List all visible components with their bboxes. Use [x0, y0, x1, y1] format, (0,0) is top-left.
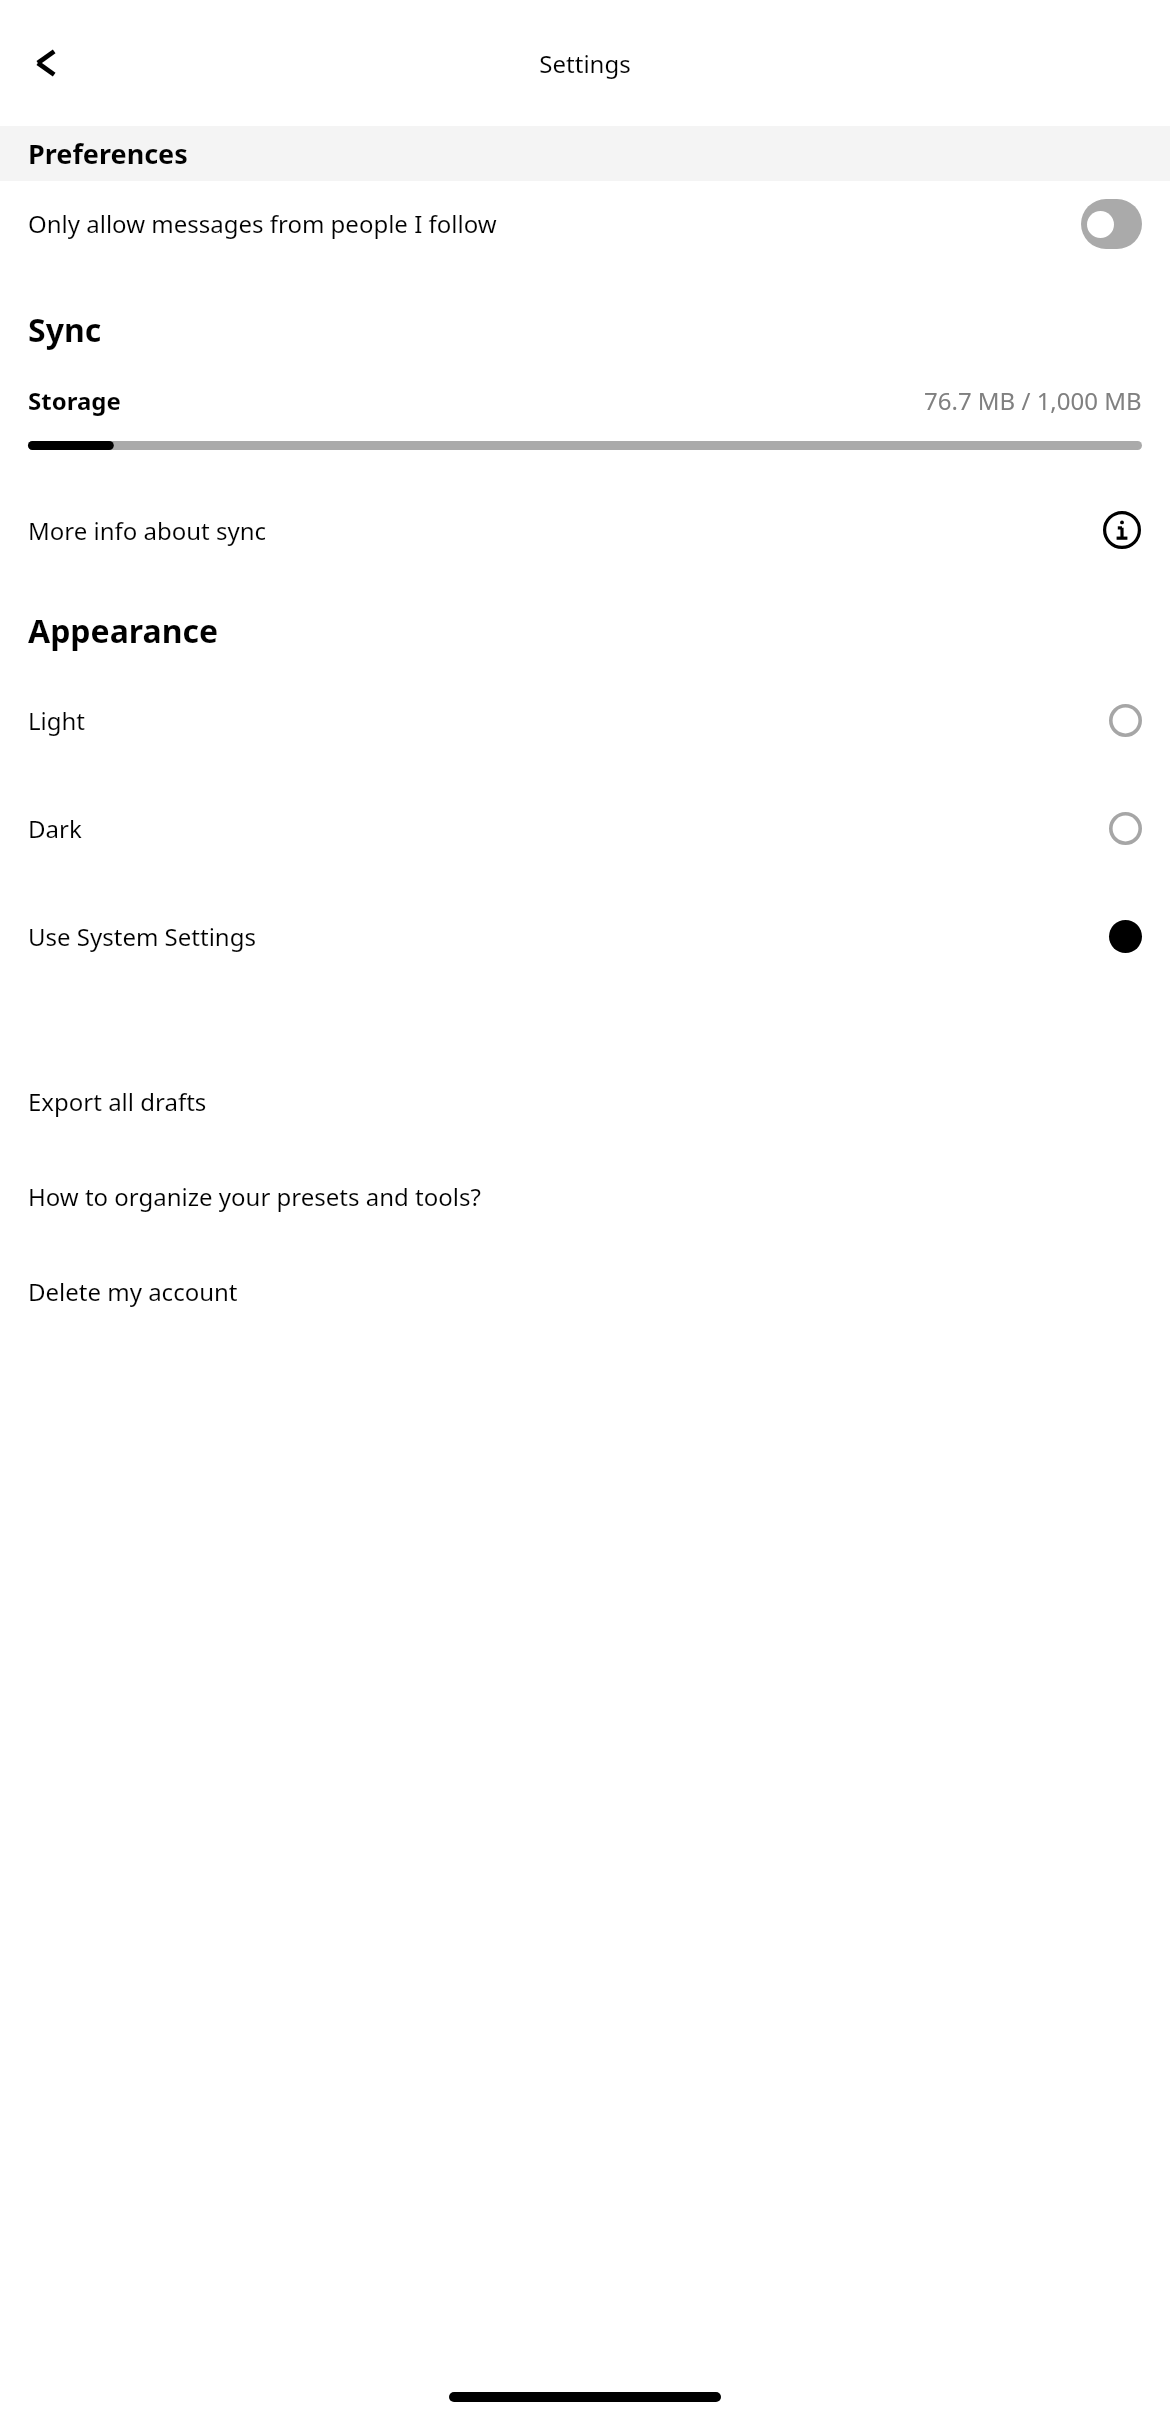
button[interactable]: Use System Settings: [0, 900, 1170, 972]
button[interactable]: How to organize your presets and tools?: [0, 1167, 1170, 1225]
button[interactable]: Back: [14, 31, 78, 95]
button[interactable]: More info about sync: [1102, 510, 1142, 550]
staticText: Delete my account: [28, 1275, 238, 1308]
button[interactable]: Only allow messages from people I follow: [0, 181, 1170, 266]
button[interactable]: Export all drafts: [0, 1072, 1170, 1130]
button[interactable]: Delete my account: [0, 1262, 1170, 1320]
staticText: Light: [28, 704, 1109, 737]
staticText: Dark: [28, 812, 1109, 845]
staticText: Sync: [28, 308, 102, 352]
staticText: Appearance: [28, 609, 219, 653]
staticText: Storage: [28, 384, 121, 417]
staticText: Preferences: [28, 135, 188, 172]
button[interactable]: More info about sync: [0, 492, 1170, 568]
staticText: Export all drafts: [28, 1085, 207, 1118]
button[interactable]: Light: [0, 684, 1170, 756]
staticText: How to organize your presets and tools?: [28, 1180, 481, 1213]
staticText: Settings: [0, 47, 1170, 80]
staticText: More info about sync: [28, 514, 1102, 547]
button[interactable]: Dark: [0, 792, 1170, 864]
button[interactable]: Only allow messages from people I follow…: [1081, 199, 1142, 249]
staticText: Only allow messages from people I follow: [28, 207, 1081, 240]
staticText: 76.7 MB / 1,000 MB: [924, 384, 1142, 417]
staticText: Use System Settings: [28, 920, 1109, 953]
